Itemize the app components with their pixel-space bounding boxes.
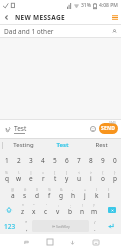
staticText: u: [77, 174, 82, 183]
button[interactable]: 6: [61, 152, 73, 169]
staticText: n: [80, 207, 85, 216]
button[interactable]: Attach: [3, 124, 13, 134]
button[interactable]: +: [79, 186, 91, 202]
staticText: !: [82, 203, 83, 208]
button[interactable]: !: [76, 202, 88, 218]
staticText: SMS: [109, 120, 117, 125]
button[interactable]: 123: [0, 218, 20, 234]
button[interactable]: &: [55, 186, 67, 202]
staticText: 8: [89, 156, 93, 165]
button[interactable]: *: [20, 218, 32, 234]
button[interactable]: ;: [64, 202, 76, 218]
staticText: ,: [26, 225, 28, 233]
button[interactable]: <: [73, 169, 85, 186]
button[interactable]: Backspace: [103, 202, 121, 218]
button[interactable]: /: [89, 218, 101, 234]
button[interactable]: Shift: [0, 202, 17, 218]
button[interactable]: 0: [109, 152, 121, 169]
button[interactable]: SEND: [99, 123, 118, 134]
button[interactable]: $: [31, 186, 43, 202]
button[interactable]: Back: [61, 234, 84, 250]
button[interactable]: |: [25, 169, 37, 186]
button[interactable]: Enter: [101, 218, 121, 234]
button[interactable]: -: [67, 186, 79, 202]
staticText: $: [36, 187, 39, 192]
button[interactable]: 9: [97, 152, 109, 169]
button[interactable]: Test: [43, 138, 82, 152]
button[interactable]: =: [37, 169, 49, 186]
staticText: e: [29, 174, 33, 183]
button[interactable]: }: [109, 169, 121, 186]
staticText: @: [11, 187, 15, 192]
button[interactable]: ]: [61, 169, 73, 186]
staticText: z: [21, 207, 25, 216]
staticText: >: [90, 170, 93, 175]
staticText: &: [60, 187, 63, 192]
staticText: ]: [66, 170, 68, 175]
staticText: SEND: [101, 125, 116, 132]
button[interactable]: Add recipient: [109, 26, 119, 36]
button[interactable]: \: [13, 169, 25, 186]
staticText: ': [46, 203, 47, 208]
staticText: {: [102, 170, 104, 175]
staticText: ?: [93, 203, 95, 208]
staticText: ): [108, 187, 110, 192]
button[interactable]: 1: [0, 152, 13, 169]
staticText: Test: [14, 124, 27, 133]
staticText: ": [33, 203, 35, 208]
button[interactable]: Rest: [82, 138, 121, 152]
staticText: *: [25, 220, 28, 225]
button[interactable]: 8: [85, 152, 97, 169]
button[interactable]: *: [17, 202, 28, 218]
staticText: 4:08 PM: [99, 2, 118, 9]
button[interactable]: {: [97, 169, 109, 186]
button[interactable]: Testing: [4, 138, 43, 152]
staticText: i: [90, 174, 92, 183]
staticText: w: [16, 174, 22, 183]
button[interactable]: ): [103, 186, 115, 202]
staticText: j: [84, 191, 86, 200]
staticText: h: [71, 191, 76, 200]
staticText: SwiftKey: [56, 224, 70, 229]
staticText: 7: [77, 156, 81, 165]
button[interactable]: #: [19, 186, 31, 202]
button[interactable]: Hide keyboard: [84, 234, 107, 250]
staticText: (: [96, 187, 98, 192]
staticText: #: [24, 187, 27, 192]
button[interactable]: ': [40, 202, 52, 218]
staticText: ;: [70, 203, 71, 208]
button[interactable]: :: [52, 202, 64, 218]
button[interactable]: 4: [37, 152, 49, 169]
button[interactable]: ": [28, 202, 40, 218]
staticText: 123: [4, 222, 16, 231]
button[interactable]: Recents: [15, 234, 38, 250]
staticText: 2: [17, 156, 21, 165]
staticText: :: [58, 203, 59, 208]
button[interactable]: More options: [108, 11, 121, 24]
staticText: q: [5, 174, 9, 183]
button[interactable]: %: [43, 186, 55, 202]
button[interactable]: Space: [32, 220, 89, 232]
staticText: }: [114, 170, 116, 175]
staticText: 3: [29, 156, 33, 165]
button[interactable]: Home: [38, 234, 61, 250]
staticText: d: [35, 191, 39, 200]
staticText: 4: [41, 156, 45, 165]
button[interactable]: 2: [13, 152, 25, 169]
button[interactable]: Dad and 1 other: [0, 25, 121, 37]
button[interactable]: ?: [88, 202, 100, 218]
button[interactable]: 5: [49, 152, 61, 169]
staticText: o: [101, 174, 105, 183]
button[interactable]: %: [0, 169, 13, 186]
button[interactable]: [: [49, 169, 61, 186]
button[interactable]: 7: [73, 152, 85, 169]
button[interactable]: @: [7, 186, 19, 202]
staticText: b: [68, 207, 72, 216]
button[interactable]: (: [91, 186, 103, 202]
button[interactable]: >: [85, 169, 97, 186]
button[interactable]: Emoji: [87, 123, 98, 134]
staticText: Test: [56, 141, 69, 149]
button[interactable]: 3: [25, 152, 37, 169]
staticText: 0: [113, 156, 117, 165]
button[interactable]: Back: [0, 11, 13, 24]
